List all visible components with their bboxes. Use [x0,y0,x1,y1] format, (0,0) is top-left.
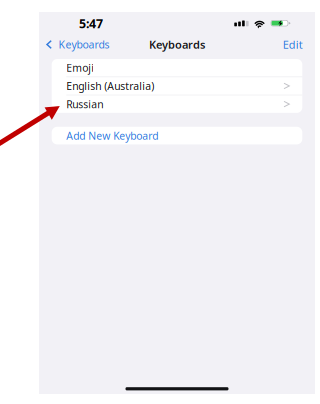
button[interactable]: Keyboards [39,34,114,55]
button[interactable]: English (Australia) [52,77,302,95]
button[interactable]: Russian [52,95,302,113]
button[interactable]: Add New Keyboard [52,127,302,144]
button[interactable]: Emoji [52,59,302,77]
staticText: Emoji [66,61,94,75]
staticText: Keyboards [149,37,205,52]
staticText: Keyboards [59,37,110,52]
staticText: Russian [66,97,103,111]
staticText: 5:47 [79,15,103,32]
button[interactable]: Edit [279,34,315,55]
staticText: Add New Keyboard [66,128,158,143]
staticText: Edit [283,37,303,52]
staticText: English (Australia) [66,79,154,93]
